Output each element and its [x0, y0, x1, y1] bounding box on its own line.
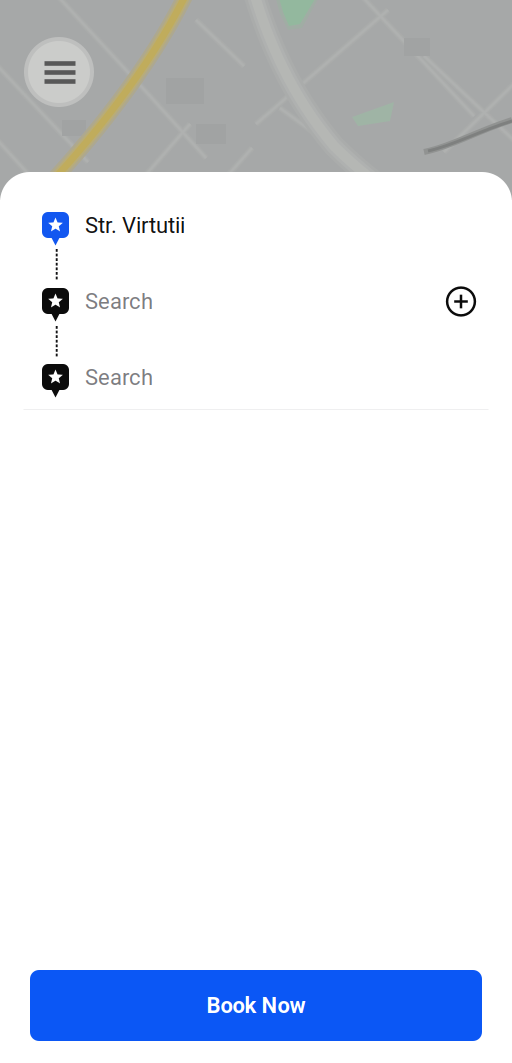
button[interactable]: Book Now	[30, 970, 482, 1041]
staticText: Search	[85, 289, 153, 314]
button[interactable]: Add stop	[439, 279, 483, 323]
button[interactable]: Menu	[25, 38, 93, 106]
button[interactable]: Search	[0, 263, 512, 339]
button[interactable]: Str. Virtutii	[0, 187, 512, 263]
staticText: Book Now	[206, 993, 305, 1018]
button[interactable]: Search	[0, 339, 512, 415]
staticText: Search	[85, 365, 153, 390]
staticText: Str. Virtutii	[85, 213, 185, 238]
